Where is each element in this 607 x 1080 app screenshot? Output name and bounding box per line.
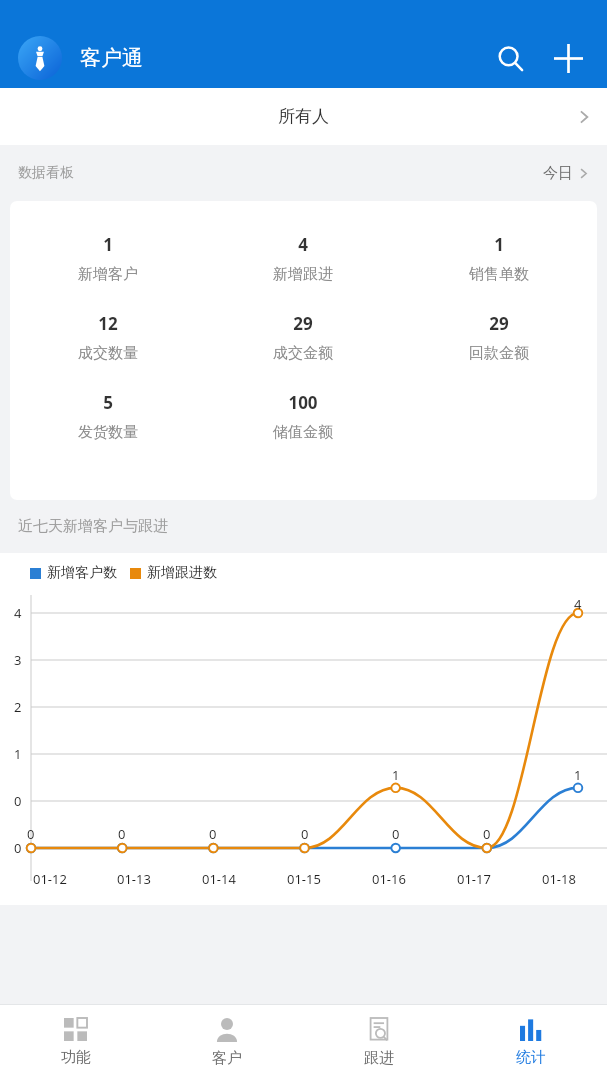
staticText: 客户 bbox=[212, 1049, 242, 1068]
staticText: 01-16 bbox=[372, 870, 406, 888]
button[interactable]: Search bbox=[485, 33, 535, 83]
staticText: 功能 bbox=[61, 1048, 91, 1067]
button[interactable]: 29 bbox=[401, 312, 597, 363]
staticText: 回款金额 bbox=[469, 344, 529, 363]
staticText: 储值金额 bbox=[273, 423, 333, 442]
staticText: 客户通 bbox=[80, 45, 143, 71]
staticText: 0 bbox=[118, 825, 126, 843]
staticText: 0 bbox=[14, 839, 22, 857]
staticText: 12 bbox=[98, 312, 118, 335]
staticText: 新增跟进数 bbox=[147, 564, 217, 582]
staticText: 29 bbox=[293, 312, 313, 335]
button[interactable]: 跟进 bbox=[303, 1005, 455, 1080]
staticText: 0 bbox=[27, 825, 35, 843]
staticText: 统计 bbox=[516, 1048, 546, 1067]
button[interactable]: 数据看板 bbox=[18, 145, 589, 201]
button[interactable]: 12 bbox=[10, 312, 205, 363]
staticText: 100 bbox=[288, 391, 318, 414]
staticText: 成交金额 bbox=[273, 344, 333, 363]
staticText: 1 bbox=[494, 233, 504, 256]
staticText: 3 bbox=[14, 651, 22, 669]
staticText: 1 bbox=[574, 766, 582, 784]
button[interactable]: 29 bbox=[205, 312, 401, 363]
staticText: 01-12 bbox=[33, 870, 67, 888]
staticText: 01-18 bbox=[542, 870, 576, 888]
staticText: 所有人 bbox=[278, 106, 329, 127]
staticText: 新增客户数 bbox=[47, 564, 117, 582]
staticText: 今日 bbox=[543, 164, 573, 183]
staticText: 0 bbox=[392, 825, 400, 843]
staticText: 4 bbox=[574, 595, 582, 613]
staticText: 1 bbox=[103, 233, 113, 256]
button[interactable]: 1 bbox=[401, 233, 597, 284]
button[interactable]: App logo bbox=[18, 36, 62, 80]
staticText: 数据看板 bbox=[18, 164, 74, 182]
staticText: 跟进 bbox=[364, 1049, 394, 1068]
button[interactable]: 功能 bbox=[0, 1005, 151, 1080]
staticText: 29 bbox=[489, 312, 509, 335]
staticText: 0 bbox=[483, 825, 491, 843]
button[interactable]: Add bbox=[543, 33, 593, 83]
staticText: 近七天新增客户与跟进 bbox=[18, 517, 168, 536]
staticText: 4 bbox=[298, 233, 308, 256]
staticText: 4 bbox=[14, 604, 22, 622]
staticText: 0 bbox=[301, 825, 309, 843]
staticText: 0 bbox=[209, 825, 217, 843]
staticText: 0 bbox=[14, 792, 22, 810]
staticText: 01-13 bbox=[117, 870, 151, 888]
staticText: 01-14 bbox=[202, 870, 236, 888]
staticText: 01-15 bbox=[287, 870, 321, 888]
staticText: 01-17 bbox=[457, 870, 491, 888]
button[interactable]: 100 bbox=[205, 391, 401, 442]
button[interactable]: 统计 bbox=[455, 1005, 607, 1080]
staticText: 发货数量 bbox=[78, 423, 138, 442]
staticText: 新增跟进 bbox=[273, 265, 333, 284]
staticText: 销售单数 bbox=[469, 265, 529, 284]
button[interactable]: 1 bbox=[10, 233, 205, 284]
staticText: 1 bbox=[14, 745, 22, 763]
staticText: 1 bbox=[392, 766, 400, 784]
button[interactable]: 4 bbox=[205, 233, 401, 284]
button[interactable]: 所有人 bbox=[0, 88, 607, 145]
staticText: 5 bbox=[103, 391, 113, 414]
staticText: 新增客户 bbox=[78, 265, 138, 284]
staticText: 2 bbox=[14, 698, 22, 716]
button[interactable]: 5 bbox=[10, 391, 205, 442]
button[interactable]: 客户 bbox=[151, 1005, 303, 1080]
staticText: 成交数量 bbox=[78, 344, 138, 363]
